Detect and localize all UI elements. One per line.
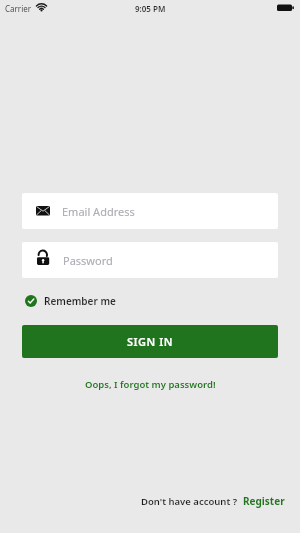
button[interactable]: Password (22, 242, 278, 278)
staticText: Don't have account ? (141, 495, 238, 508)
button[interactable]: Email Address (22, 193, 278, 229)
staticText: SIGN IN (127, 334, 173, 349)
staticText: Register (243, 494, 285, 508)
staticText: Email Address (62, 204, 135, 219)
button[interactable]: SIGN IN (22, 325, 278, 358)
staticText: Remember me (44, 294, 116, 308)
button[interactable]: Oops, I forgot my password! (85, 378, 216, 391)
button[interactable]: Remember me (25, 294, 116, 308)
staticText: 9:05 PM (135, 3, 166, 14)
staticText: Oops, I forgot my password! (85, 378, 216, 391)
staticText: Password (63, 253, 113, 268)
staticText: Carrier (5, 3, 32, 14)
button[interactable]: Register (243, 494, 285, 508)
